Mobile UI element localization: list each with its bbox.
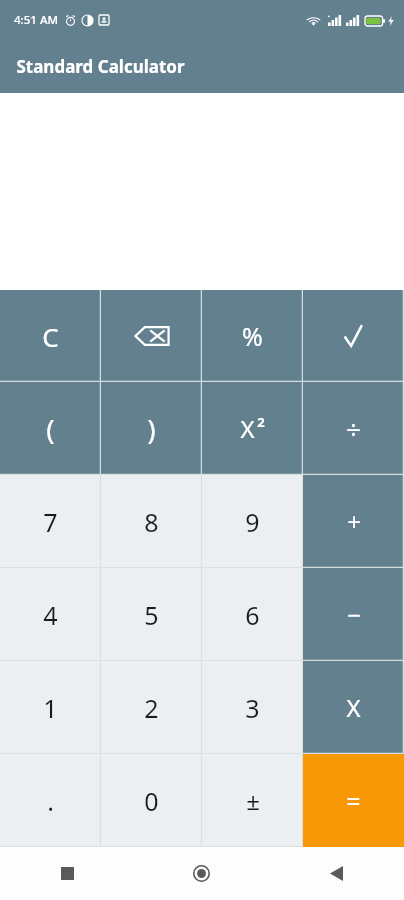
staticText: 9: [245, 505, 260, 539]
button[interactable]: C: [0, 290, 101, 382]
button[interactable]: ): [101, 382, 202, 475]
staticText: X: [240, 412, 255, 445]
button[interactable]: Back: [269, 847, 404, 900]
button[interactable]: ±: [202, 754, 303, 847]
staticText: 4:51 AM: [14, 12, 58, 28]
staticText: 2: [257, 413, 265, 431]
button[interactable]: X: [202, 382, 303, 475]
button[interactable]: Square root: [303, 290, 404, 382]
button[interactable]: −: [303, 568, 404, 661]
button[interactable]: 6: [202, 568, 303, 661]
staticText: =: [346, 784, 361, 818]
button[interactable]: 9: [202, 475, 303, 568]
staticText: 5: [144, 598, 159, 632]
staticText: 1: [43, 691, 58, 725]
staticText: 2: [144, 691, 159, 725]
button[interactable]: 0: [101, 754, 202, 847]
staticText: +: [347, 505, 361, 538]
button[interactable]: X: [303, 661, 404, 754]
button[interactable]: 1: [0, 661, 101, 754]
button[interactable]: %: [202, 290, 303, 382]
staticText: 6: [245, 598, 260, 632]
staticText: .: [47, 784, 54, 818]
staticText: ): [147, 410, 156, 448]
button[interactable]: Home: [134, 847, 269, 900]
staticText: C: [42, 319, 59, 354]
button[interactable]: Recents: [0, 847, 134, 900]
staticText: X: [346, 691, 361, 724]
button[interactable]: .: [0, 754, 101, 847]
staticText: Standard Calculator: [16, 55, 185, 78]
button[interactable]: +: [303, 475, 404, 568]
button[interactable]: 4: [0, 568, 101, 661]
button[interactable]: ÷: [303, 382, 404, 475]
button[interactable]: 7: [0, 475, 101, 568]
button[interactable]: 2: [101, 661, 202, 754]
staticText: 0: [144, 784, 159, 818]
button[interactable]: 8: [101, 475, 202, 568]
button[interactable]: 5: [101, 568, 202, 661]
staticText: %: [242, 319, 263, 353]
staticText: ±: [246, 784, 260, 817]
staticText: (: [46, 410, 55, 448]
button[interactable]: 3: [202, 661, 303, 754]
staticText: 7: [43, 505, 58, 539]
button[interactable]: (: [0, 382, 101, 475]
button[interactable]: =: [303, 754, 404, 847]
staticText: 4: [43, 598, 58, 632]
staticText: ÷: [346, 411, 361, 446]
staticText: −: [347, 598, 361, 631]
button[interactable]: Backspace: [101, 290, 202, 382]
staticText: 8: [144, 505, 159, 539]
staticText: 3: [245, 691, 260, 725]
